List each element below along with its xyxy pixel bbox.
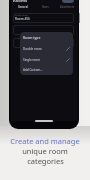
staticText: Room type: [23, 35, 41, 39]
staticText: Single room: [23, 58, 40, 62]
button[interactable]: Room name: [13, 13, 74, 23]
staticText: unique room: [22, 146, 68, 156]
staticText: Create and manage: [10, 136, 80, 146]
button[interactable]: Single room: [20, 56, 73, 63]
staticText: Add Custom...: [23, 68, 43, 72]
button[interactable]: General: [11, 5, 34, 10]
button[interactable]: Double room: [20, 45, 73, 52]
button[interactable]: [13, 38, 74, 48]
button[interactable]: Add Custom...: [20, 66, 73, 73]
button[interactable]: Rates: [34, 5, 56, 10]
other: Edit: [66, 47, 70, 51]
staticText: General: [18, 5, 28, 9]
button[interactable]: Profile: [62, 0, 74, 3]
button[interactable]: [13, 25, 74, 35]
staticText: Rates: [42, 5, 49, 9]
staticText: Rooms: [13, 0, 28, 4]
staticText: Double room: [23, 47, 42, 51]
staticText: Attachment: [60, 5, 75, 9]
staticText: Room 456: [15, 17, 30, 21]
other: Edit: [66, 58, 70, 62]
button[interactable]: Attachment: [56, 5, 78, 10]
staticText: categories: [27, 156, 64, 166]
staticText: Room name: [15, 14, 28, 17]
